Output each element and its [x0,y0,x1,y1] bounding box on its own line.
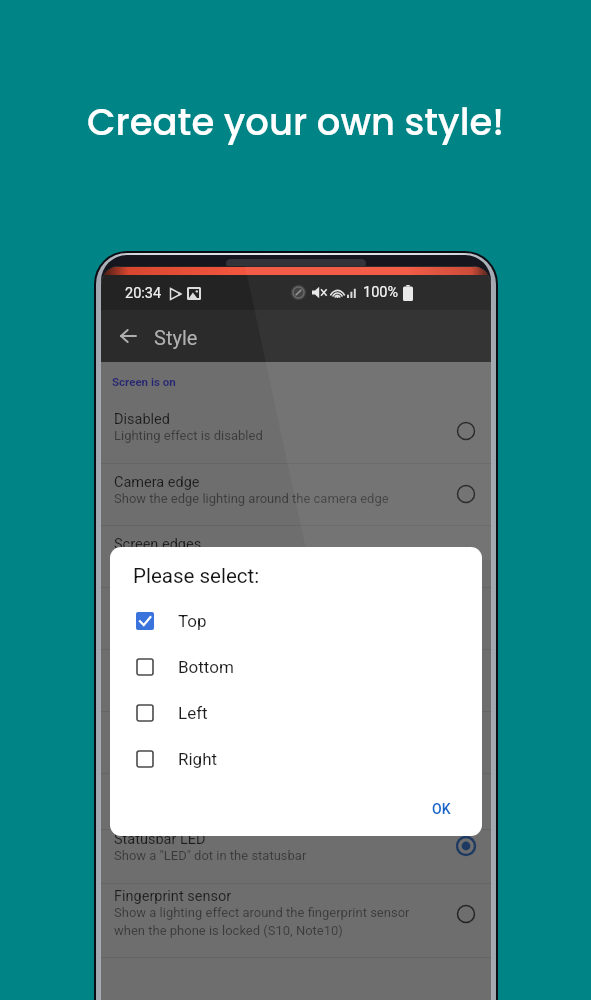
staticText: Screen edges [114,536,202,553]
staticText: Show the edge lighting around the camera… [114,491,389,506]
button[interactable]: Bottom [110,644,482,690]
staticText: Right [178,749,218,769]
staticText: Statusbar LED [114,831,206,848]
staticText: Bottom [178,657,234,677]
button[interactable]: Notch [101,650,491,711]
button[interactable]: Screen edges [101,526,491,587]
button[interactable]: Top [110,598,482,644]
staticText: Show a lighting effect around the finger… [114,905,410,938]
staticText: Corner lighting [114,598,209,615]
button[interactable]: Camera edge [101,464,491,525]
staticText: Show a "LED" dot in the statusbar [114,848,307,863]
staticText: Screen is on [112,375,176,388]
button[interactable]: Corner lighting [101,588,491,649]
staticText: Top [178,611,207,631]
staticText: Notch [114,660,153,677]
button[interactable]: Statusbar LED [101,830,491,883]
staticText: OK [432,801,451,817]
staticText: Please select: [133,564,260,588]
staticText: Disabled [114,411,170,428]
staticText: Show a lighting effect in the corners [114,615,322,630]
staticText: Camera edge [114,474,200,491]
staticText: Fingerprint sensor [114,888,232,905]
button[interactable]: OK [420,792,463,826]
staticText: 20:34 [125,285,162,302]
button[interactable]: Fingerprint sensor [101,884,491,957]
button[interactable]: Right [110,736,482,782]
button[interactable]: Always on display [101,712,491,773]
staticText: Create your own style! [0,96,591,148]
button[interactable]: Border light [101,774,491,829]
button[interactable]: Left [110,690,482,736]
button[interactable]: Disabled [101,401,491,463]
staticText: Left [178,703,208,723]
staticText: Lighting effect is disabled [114,428,263,443]
staticText: Show a lighting effect on the AOD [114,739,308,754]
staticText: 100% [363,284,399,301]
staticText: Style [154,326,198,349]
button[interactable]: Back [104,312,152,360]
